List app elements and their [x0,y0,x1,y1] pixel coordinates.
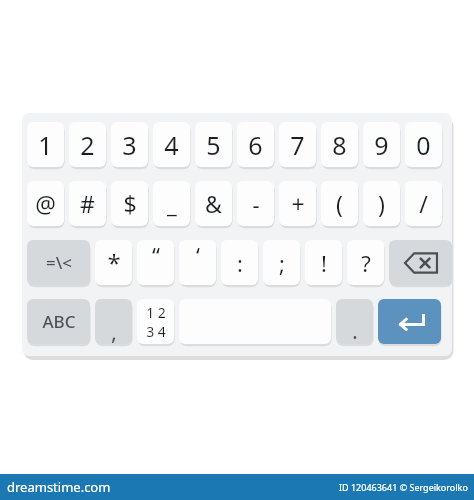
staticText: 6 [248,128,263,162]
staticText: 1 [38,128,53,162]
staticText: $ [123,188,137,219]
staticText: 4 [164,128,179,162]
button[interactable]: : [221,240,258,285]
staticText: _ [167,189,177,219]
button[interactable]: $ [111,181,148,226]
staticText: 1 2 [146,303,166,322]
button[interactable]: / [405,181,442,226]
button[interactable]: ; [263,240,300,285]
button[interactable]: & [195,181,232,226]
staticText: 7 [290,128,305,162]
staticText: dreamstime.com [7,478,111,496]
button[interactable]: 4 [153,122,190,167]
button[interactable]: “ [137,240,174,285]
staticText: ; [279,248,285,278]
staticText: ID 120463641 © Sergeikorolko [339,481,468,493]
button[interactable]: 8 [321,122,358,167]
button[interactable]: 1 [27,122,64,167]
staticText: + [291,188,305,219]
staticText: , [111,316,117,344]
button[interactable]: _ [153,181,190,226]
staticText: 5 [206,128,221,162]
staticText: ! [321,248,327,278]
button[interactable]: . [336,299,373,344]
staticText: ‘ [196,240,200,270]
button[interactable]: # [69,181,106,226]
button[interactable]: Backspace [389,240,452,285]
staticText: ABC [42,310,76,333]
button[interactable]: ‘ [179,240,216,285]
staticText: * [107,246,121,279]
staticText: - [252,189,260,219]
staticText: 8 [332,128,347,162]
button[interactable]: 2 [69,122,106,167]
staticText: 2 [80,128,95,162]
button[interactable]: ABC [27,299,90,344]
button[interactable]: 1 2 [137,299,174,344]
staticText: ( [336,188,343,219]
button[interactable]: 7 [279,122,316,167]
button[interactable]: * [95,240,132,285]
staticText: . [352,315,358,344]
staticText: & [205,188,222,219]
button[interactable]: 0 [405,122,442,167]
button[interactable]: @ [27,181,64,226]
button[interactable]: =\< [27,240,90,285]
button[interactable]: - [237,181,274,226]
button[interactable]: ) [363,181,400,226]
staticText: # [80,188,95,219]
staticText: 3 [122,128,137,162]
button[interactable]: ( [321,181,358,226]
button[interactable]: + [279,181,316,226]
button[interactable]: 3 [111,122,148,167]
button[interactable]: , [95,299,132,344]
staticText: 9 [374,128,389,162]
staticText: / [419,188,428,219]
staticText: 0 [416,128,431,162]
staticText: 3 4 [146,322,166,341]
button[interactable]: Enter [378,299,441,344]
staticText: ) [378,188,385,219]
staticText: =\< [46,251,72,274]
button[interactable]: 5 [195,122,232,167]
staticText: : [237,248,243,278]
button[interactable]: 6 [237,122,274,167]
button[interactable]: 9 [363,122,400,167]
staticText: @ [35,188,56,219]
button[interactable]: ! [305,240,342,285]
staticText: “ [152,240,160,270]
button[interactable]: ? [347,240,384,285]
staticText: ? [361,248,371,278]
